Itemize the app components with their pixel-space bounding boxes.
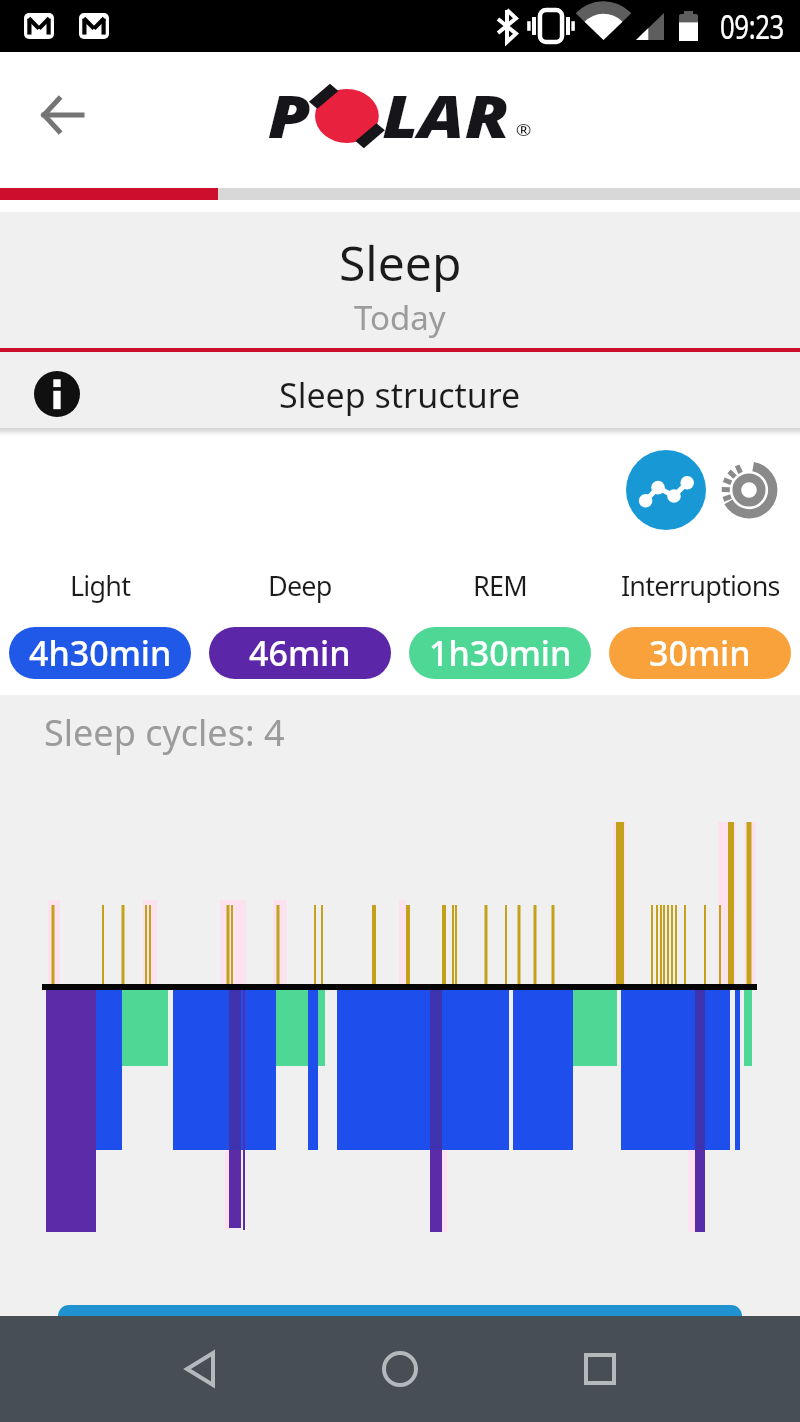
button[interactable] xyxy=(100,1316,300,1422)
button[interactable]: 4h30min xyxy=(9,627,191,679)
staticText: REM xyxy=(473,567,527,604)
staticText: P xyxy=(268,76,311,155)
staticText: 09:23 xyxy=(720,4,784,49)
button[interactable] xyxy=(720,461,778,519)
staticText: Sleep cycles: 4 xyxy=(44,708,285,757)
staticText: Today xyxy=(354,295,446,340)
button[interactable] xyxy=(42,97,84,133)
button[interactable]: 1h30min xyxy=(409,627,591,679)
staticText: 30min xyxy=(649,630,751,676)
button[interactable] xyxy=(300,1316,500,1422)
button[interactable] xyxy=(58,1305,742,1316)
button[interactable]: 46min xyxy=(209,627,391,679)
button[interactable]: 30min xyxy=(609,627,791,679)
staticText: 1h30min xyxy=(429,630,572,676)
staticText: 4h30min xyxy=(29,630,172,676)
button[interactable]: Sleep structure xyxy=(0,352,800,428)
staticText: Light xyxy=(70,567,131,604)
staticText: Deep xyxy=(268,567,332,604)
staticText: Sleep structure xyxy=(279,372,521,418)
staticText: 46min xyxy=(249,630,351,676)
button[interactable] xyxy=(500,1316,700,1422)
staticText: LAR xyxy=(382,76,510,155)
staticText: ® xyxy=(516,119,532,141)
staticText: Interruptions xyxy=(621,567,780,604)
button[interactable] xyxy=(626,450,706,530)
staticText: Sleep xyxy=(339,230,462,295)
